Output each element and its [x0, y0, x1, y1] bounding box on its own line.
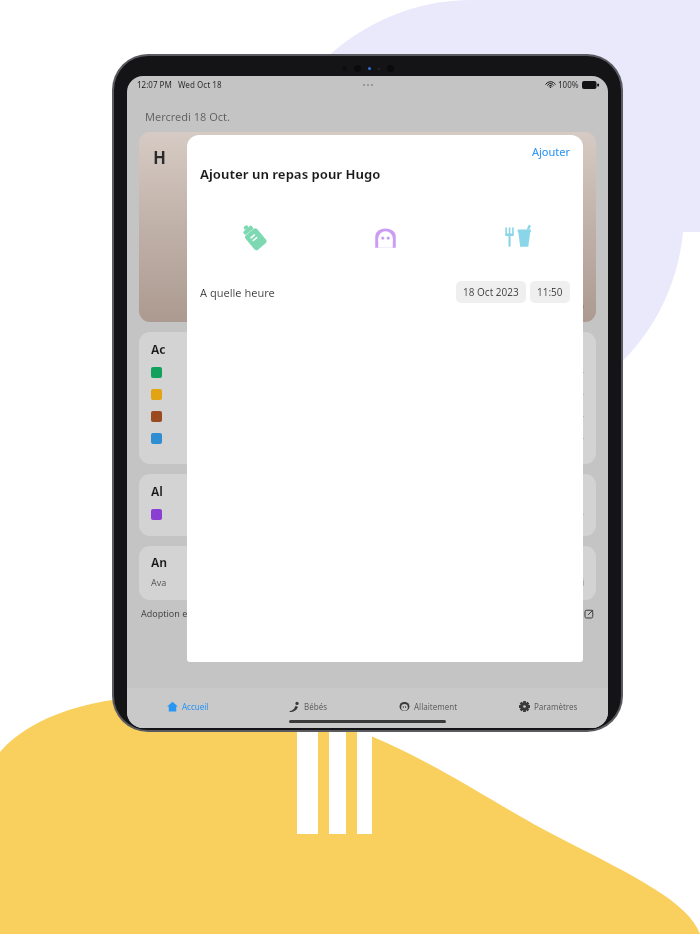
button[interactable]: H — [139, 132, 596, 322]
button[interactable] — [151, 405, 584, 427]
button[interactable]: Repas solide — [494, 213, 540, 259]
staticText: A quelle heure — [200, 285, 275, 300]
staticText: Al — [151, 483, 163, 499]
staticText: Paramètres — [534, 701, 578, 712]
staticText: Accueil — [182, 701, 209, 712]
button[interactable]: Allaitement — [362, 213, 408, 259]
staticText: Mercredi 18 Oct. — [145, 109, 231, 124]
staticText: Ac — [151, 341, 166, 357]
staticText: Bébés — [304, 701, 327, 712]
button[interactable]: Ajouter — [522, 142, 583, 163]
staticText: 100% — [558, 79, 579, 90]
staticText: Wed Oct 18 — [178, 79, 222, 90]
button[interactable]: 11:50 — [530, 281, 570, 303]
button[interactable]: 18 Oct 2023 — [456, 281, 526, 303]
staticText: An — [151, 554, 168, 570]
button[interactable] — [151, 427, 584, 449]
button[interactable]: Ava — [151, 576, 584, 588]
staticText: Adoption et allaitement — [141, 607, 241, 619]
staticText: 11:50 — [537, 285, 563, 299]
button[interactable]: Adoption et allaitement — [141, 607, 594, 619]
button[interactable] — [151, 503, 584, 525]
button[interactable] — [151, 361, 584, 383]
staticText: Ajouter un repas pour Hugo — [200, 165, 381, 183]
button[interactable]: Accueil — [127, 693, 248, 719]
staticText: Ava — [151, 576, 167, 588]
staticText: 18 Oct 2023 — [463, 285, 519, 299]
staticText: s) — [576, 299, 584, 313]
button[interactable]: Bébés — [248, 693, 368, 719]
button[interactable]: Allaitement — [368, 693, 488, 719]
button[interactable]: Paramètres — [488, 693, 608, 719]
button[interactable]: Biberon — [230, 213, 276, 259]
staticText: Allaitement — [414, 701, 458, 712]
staticText: H — [153, 146, 167, 169]
button[interactable] — [151, 383, 584, 405]
staticText: 12:07 PM — [137, 79, 172, 90]
